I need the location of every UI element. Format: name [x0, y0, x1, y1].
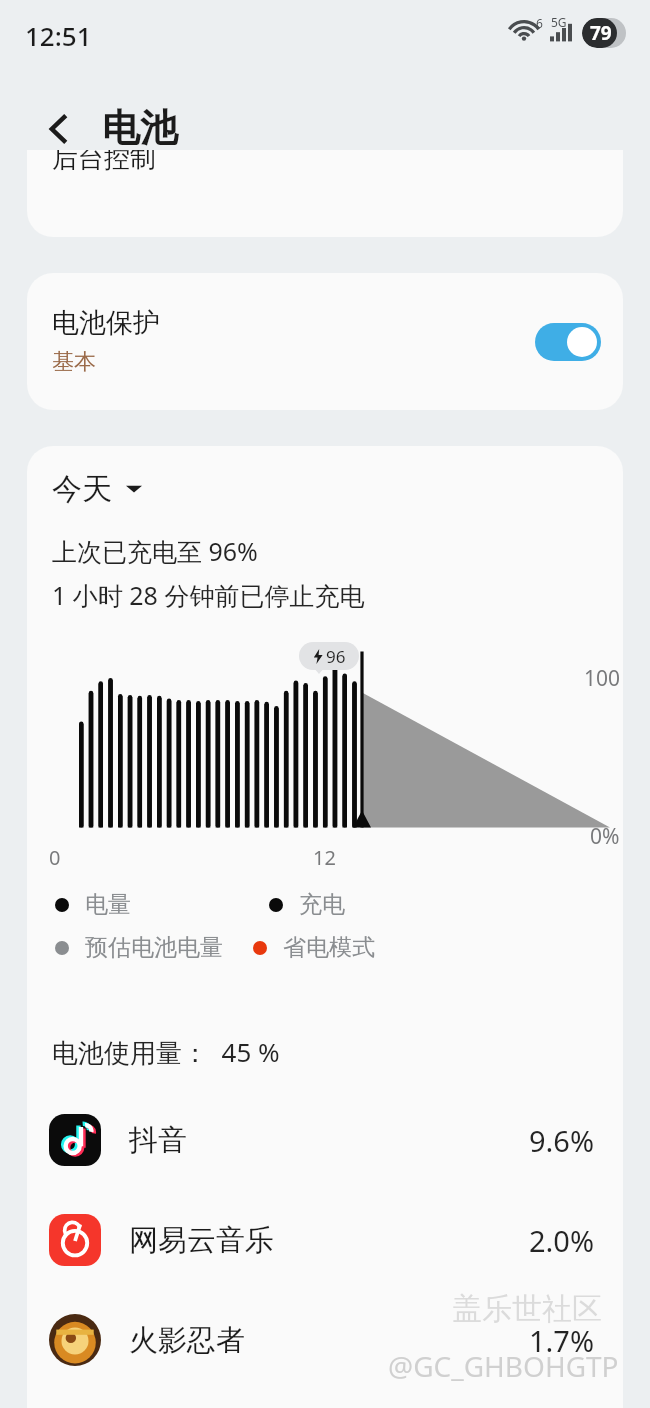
- staticText: 96: [326, 645, 346, 668]
- staticText: 火影忍者: [129, 1322, 245, 1359]
- staticText: 电池保护: [52, 306, 160, 340]
- button[interactable]: 今天: [52, 470, 142, 508]
- staticText: 12: [313, 844, 336, 871]
- staticText: 抖音: [129, 1122, 187, 1159]
- staticText: 0: [49, 844, 61, 871]
- staticText: 电池使用量： 45 %: [52, 1034, 280, 1070]
- staticText: 后台控制: [52, 150, 156, 175]
- staticText: 1 小时 28 分钟前已停止充电: [52, 578, 365, 612]
- staticText: 电量: [85, 890, 131, 919]
- staticText: 79: [590, 20, 612, 46]
- staticText: 5G: [551, 14, 567, 30]
- staticText: 网易云音乐: [129, 1222, 274, 1259]
- staticText: 省电模式: [283, 933, 375, 962]
- staticText: 6: [536, 15, 543, 31]
- staticText: 电池: [102, 104, 178, 152]
- button[interactable]: 电池保护开关: [535, 323, 601, 361]
- staticText: 今天: [52, 470, 112, 508]
- staticText: 100: [584, 664, 621, 693]
- button[interactable]: 抖音: [27, 1102, 623, 1178]
- staticText: 上次已充电至 96%: [52, 534, 258, 568]
- button[interactable]: 返回: [36, 105, 84, 153]
- staticText: 预估电池电量: [85, 933, 223, 962]
- staticText: 1.7%: [529, 1321, 595, 1360]
- staticText: 2.0%: [529, 1221, 595, 1260]
- staticText: 盖乐世社区: [452, 1290, 602, 1328]
- staticText: 12:51: [25, 18, 92, 53]
- staticText: @GC_GHBOHGTP: [388, 1347, 619, 1385]
- button[interactable]: 网易云音乐: [27, 1202, 623, 1278]
- button[interactable]: 后台控制: [27, 150, 623, 237]
- staticText: 充电: [299, 890, 345, 919]
- staticText: 0%: [590, 822, 620, 851]
- button[interactable]: 电池保护: [27, 273, 623, 410]
- staticText: 基本: [52, 348, 96, 376]
- button[interactable]: 火影忍者: [27, 1302, 623, 1378]
- staticText: 9.6%: [529, 1121, 595, 1160]
